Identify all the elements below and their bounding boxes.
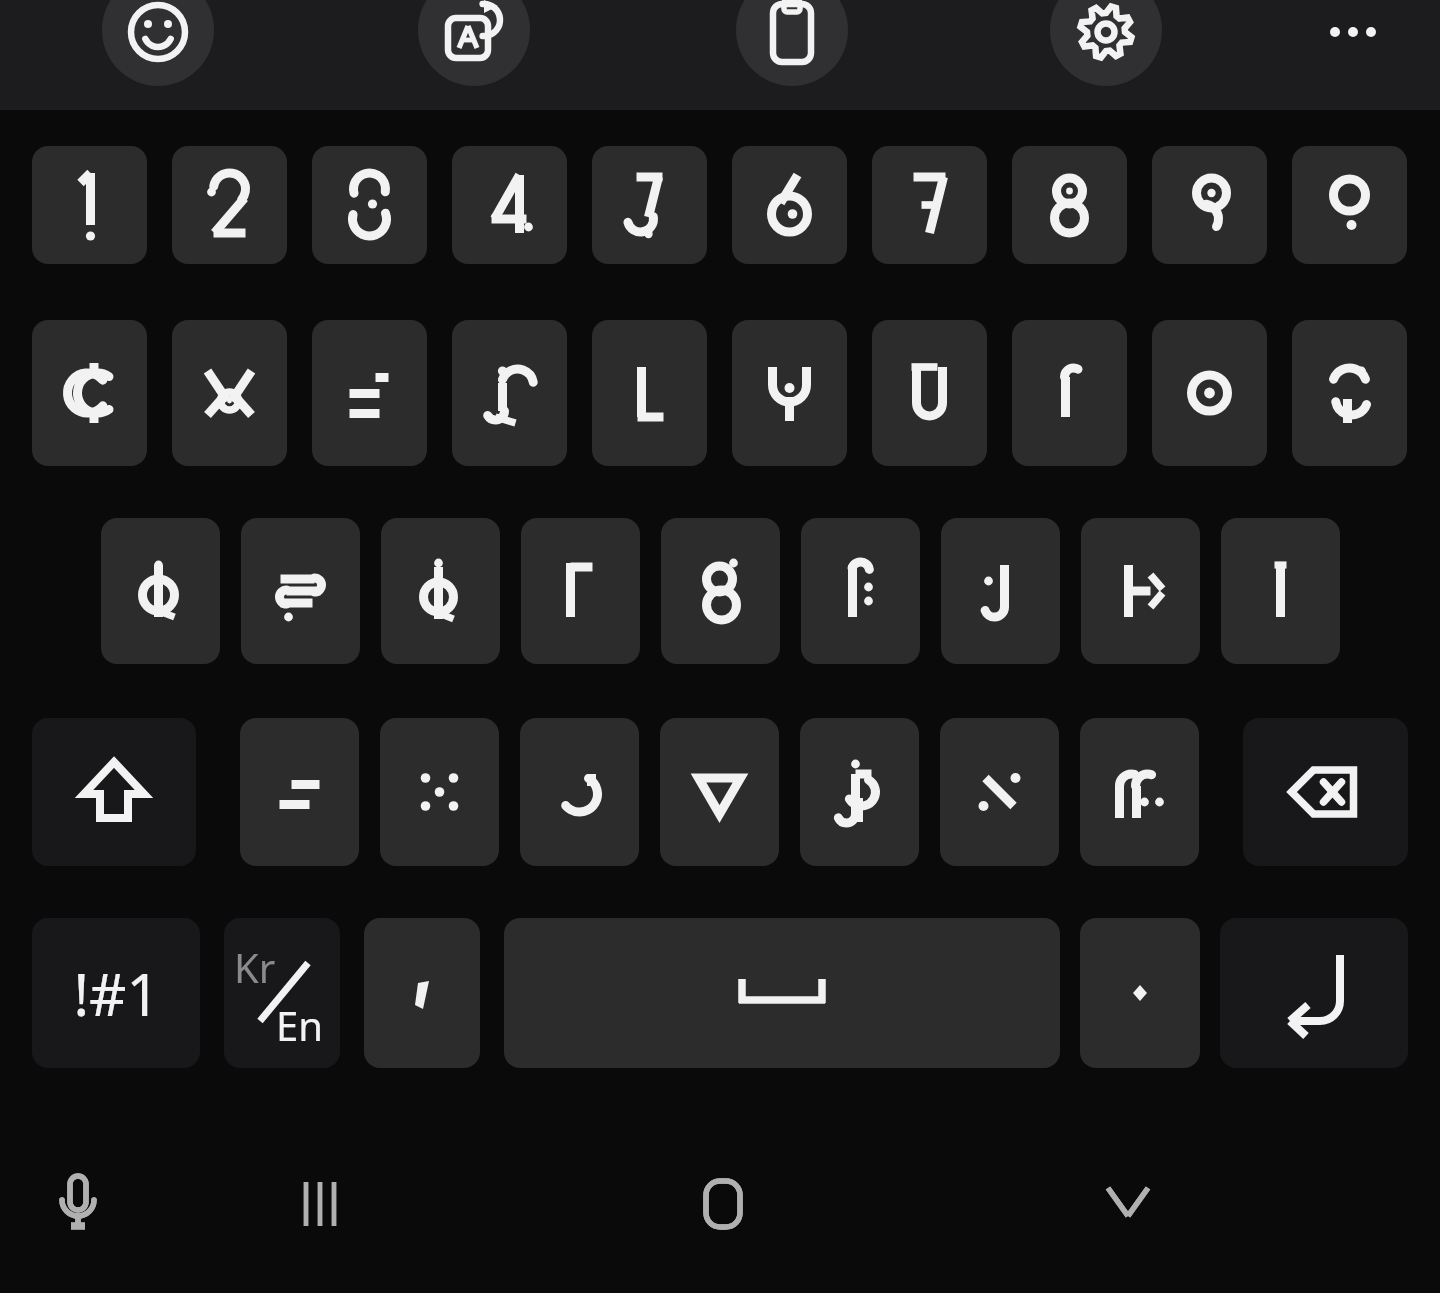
button[interactable]: Voice input [18, 1140, 138, 1260]
button[interactable] [520, 718, 639, 866]
button[interactable] [452, 146, 567, 264]
button[interactable] [241, 518, 360, 664]
button[interactable] [312, 146, 427, 264]
button[interactable] [592, 320, 707, 466]
button[interactable] [380, 718, 499, 866]
button[interactable] [592, 146, 707, 264]
button[interactable] [1152, 320, 1267, 466]
button[interactable] [1292, 320, 1407, 466]
button[interactable] [940, 718, 1059, 866]
button[interactable] [32, 146, 147, 264]
button[interactable] [1080, 918, 1200, 1068]
button[interactable] [660, 718, 779, 866]
button[interactable] [1080, 718, 1199, 866]
button[interactable] [1081, 518, 1200, 664]
staticText: En [276, 998, 323, 1052]
button[interactable] [521, 518, 640, 664]
button[interactable] [240, 718, 359, 866]
button[interactable]: Recents [260, 1140, 380, 1260]
button[interactable]: Emoji [102, 0, 214, 86]
button[interactable]: Backspace [1243, 718, 1408, 866]
button[interactable]: More options [1303, 0, 1403, 100]
button[interactable]: Settings [1050, 0, 1162, 86]
button[interactable] [941, 518, 1060, 664]
button[interactable] [1292, 146, 1407, 264]
button[interactable] [452, 320, 567, 466]
button[interactable]: Space [504, 918, 1060, 1068]
button[interactable]: Shift [32, 718, 196, 866]
button[interactable] [872, 320, 987, 466]
button[interactable] [1012, 320, 1127, 466]
button[interactable] [364, 918, 480, 1068]
button[interactable] [1012, 146, 1127, 264]
button[interactable] [32, 320, 147, 466]
staticText: Kr [234, 940, 276, 994]
button[interactable] [172, 320, 287, 466]
staticText: !#1 [73, 954, 160, 1033]
button[interactable] [732, 146, 847, 264]
button[interactable] [1152, 146, 1267, 264]
button[interactable] [172, 146, 287, 264]
button[interactable] [800, 718, 919, 866]
button[interactable] [872, 146, 987, 264]
button[interactable]: Switch language [224, 918, 340, 1068]
button[interactable] [101, 518, 220, 664]
button[interactable]: Hide keyboard [1068, 1140, 1188, 1260]
button[interactable] [661, 518, 780, 664]
button[interactable]: Clipboard [736, 0, 848, 86]
button[interactable]: Translate [418, 0, 530, 86]
button[interactable] [312, 320, 427, 466]
button[interactable]: Enter [1220, 918, 1408, 1068]
button[interactable] [732, 320, 847, 466]
button[interactable]: Home [663, 1140, 783, 1260]
button[interactable]: !#1 [32, 918, 200, 1068]
button[interactable] [1221, 518, 1340, 664]
button[interactable] [381, 518, 500, 664]
button[interactable] [801, 518, 920, 664]
